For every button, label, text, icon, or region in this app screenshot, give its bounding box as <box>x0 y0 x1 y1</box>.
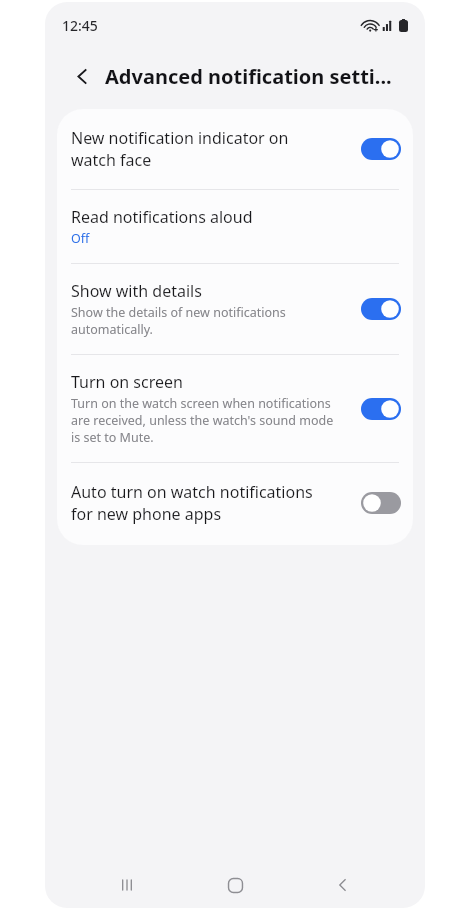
button[interactable]: Back <box>317 862 369 908</box>
staticText: Off <box>71 230 90 247</box>
staticText: Turn on the watch screen when notificati… <box>71 395 334 446</box>
button[interactable]: Turn on screen <box>57 355 413 462</box>
button[interactable]: Toggle on <box>361 398 401 420</box>
staticText: Turn on screen <box>71 371 183 393</box>
staticText: Show with details <box>71 280 202 302</box>
button[interactable]: New notification indicator on watch face <box>57 109 413 189</box>
staticText: Show the details of new notifications au… <box>71 304 286 338</box>
button[interactable]: Auto turn on watch notifications for new… <box>57 463 413 545</box>
button[interactable]: Recent apps <box>101 862 153 908</box>
staticText: 12:45 <box>62 16 98 35</box>
staticText: Advanced notification setti... <box>105 63 392 90</box>
button[interactable]: Toggle on <box>361 298 401 320</box>
button[interactable]: Back <box>63 57 101 95</box>
button[interactable]: Toggle on <box>361 138 401 160</box>
button[interactable]: Read notifications aloud <box>57 190 413 263</box>
staticText: New notification indicator on watch face <box>71 127 289 171</box>
button[interactable]: Toggle off <box>361 492 401 514</box>
button[interactable]: Show with details <box>57 264 413 354</box>
staticText: Read notifications aloud <box>71 206 253 228</box>
staticText: Auto turn on watch notifications for new… <box>71 481 313 525</box>
button[interactable]: Home <box>209 862 261 908</box>
